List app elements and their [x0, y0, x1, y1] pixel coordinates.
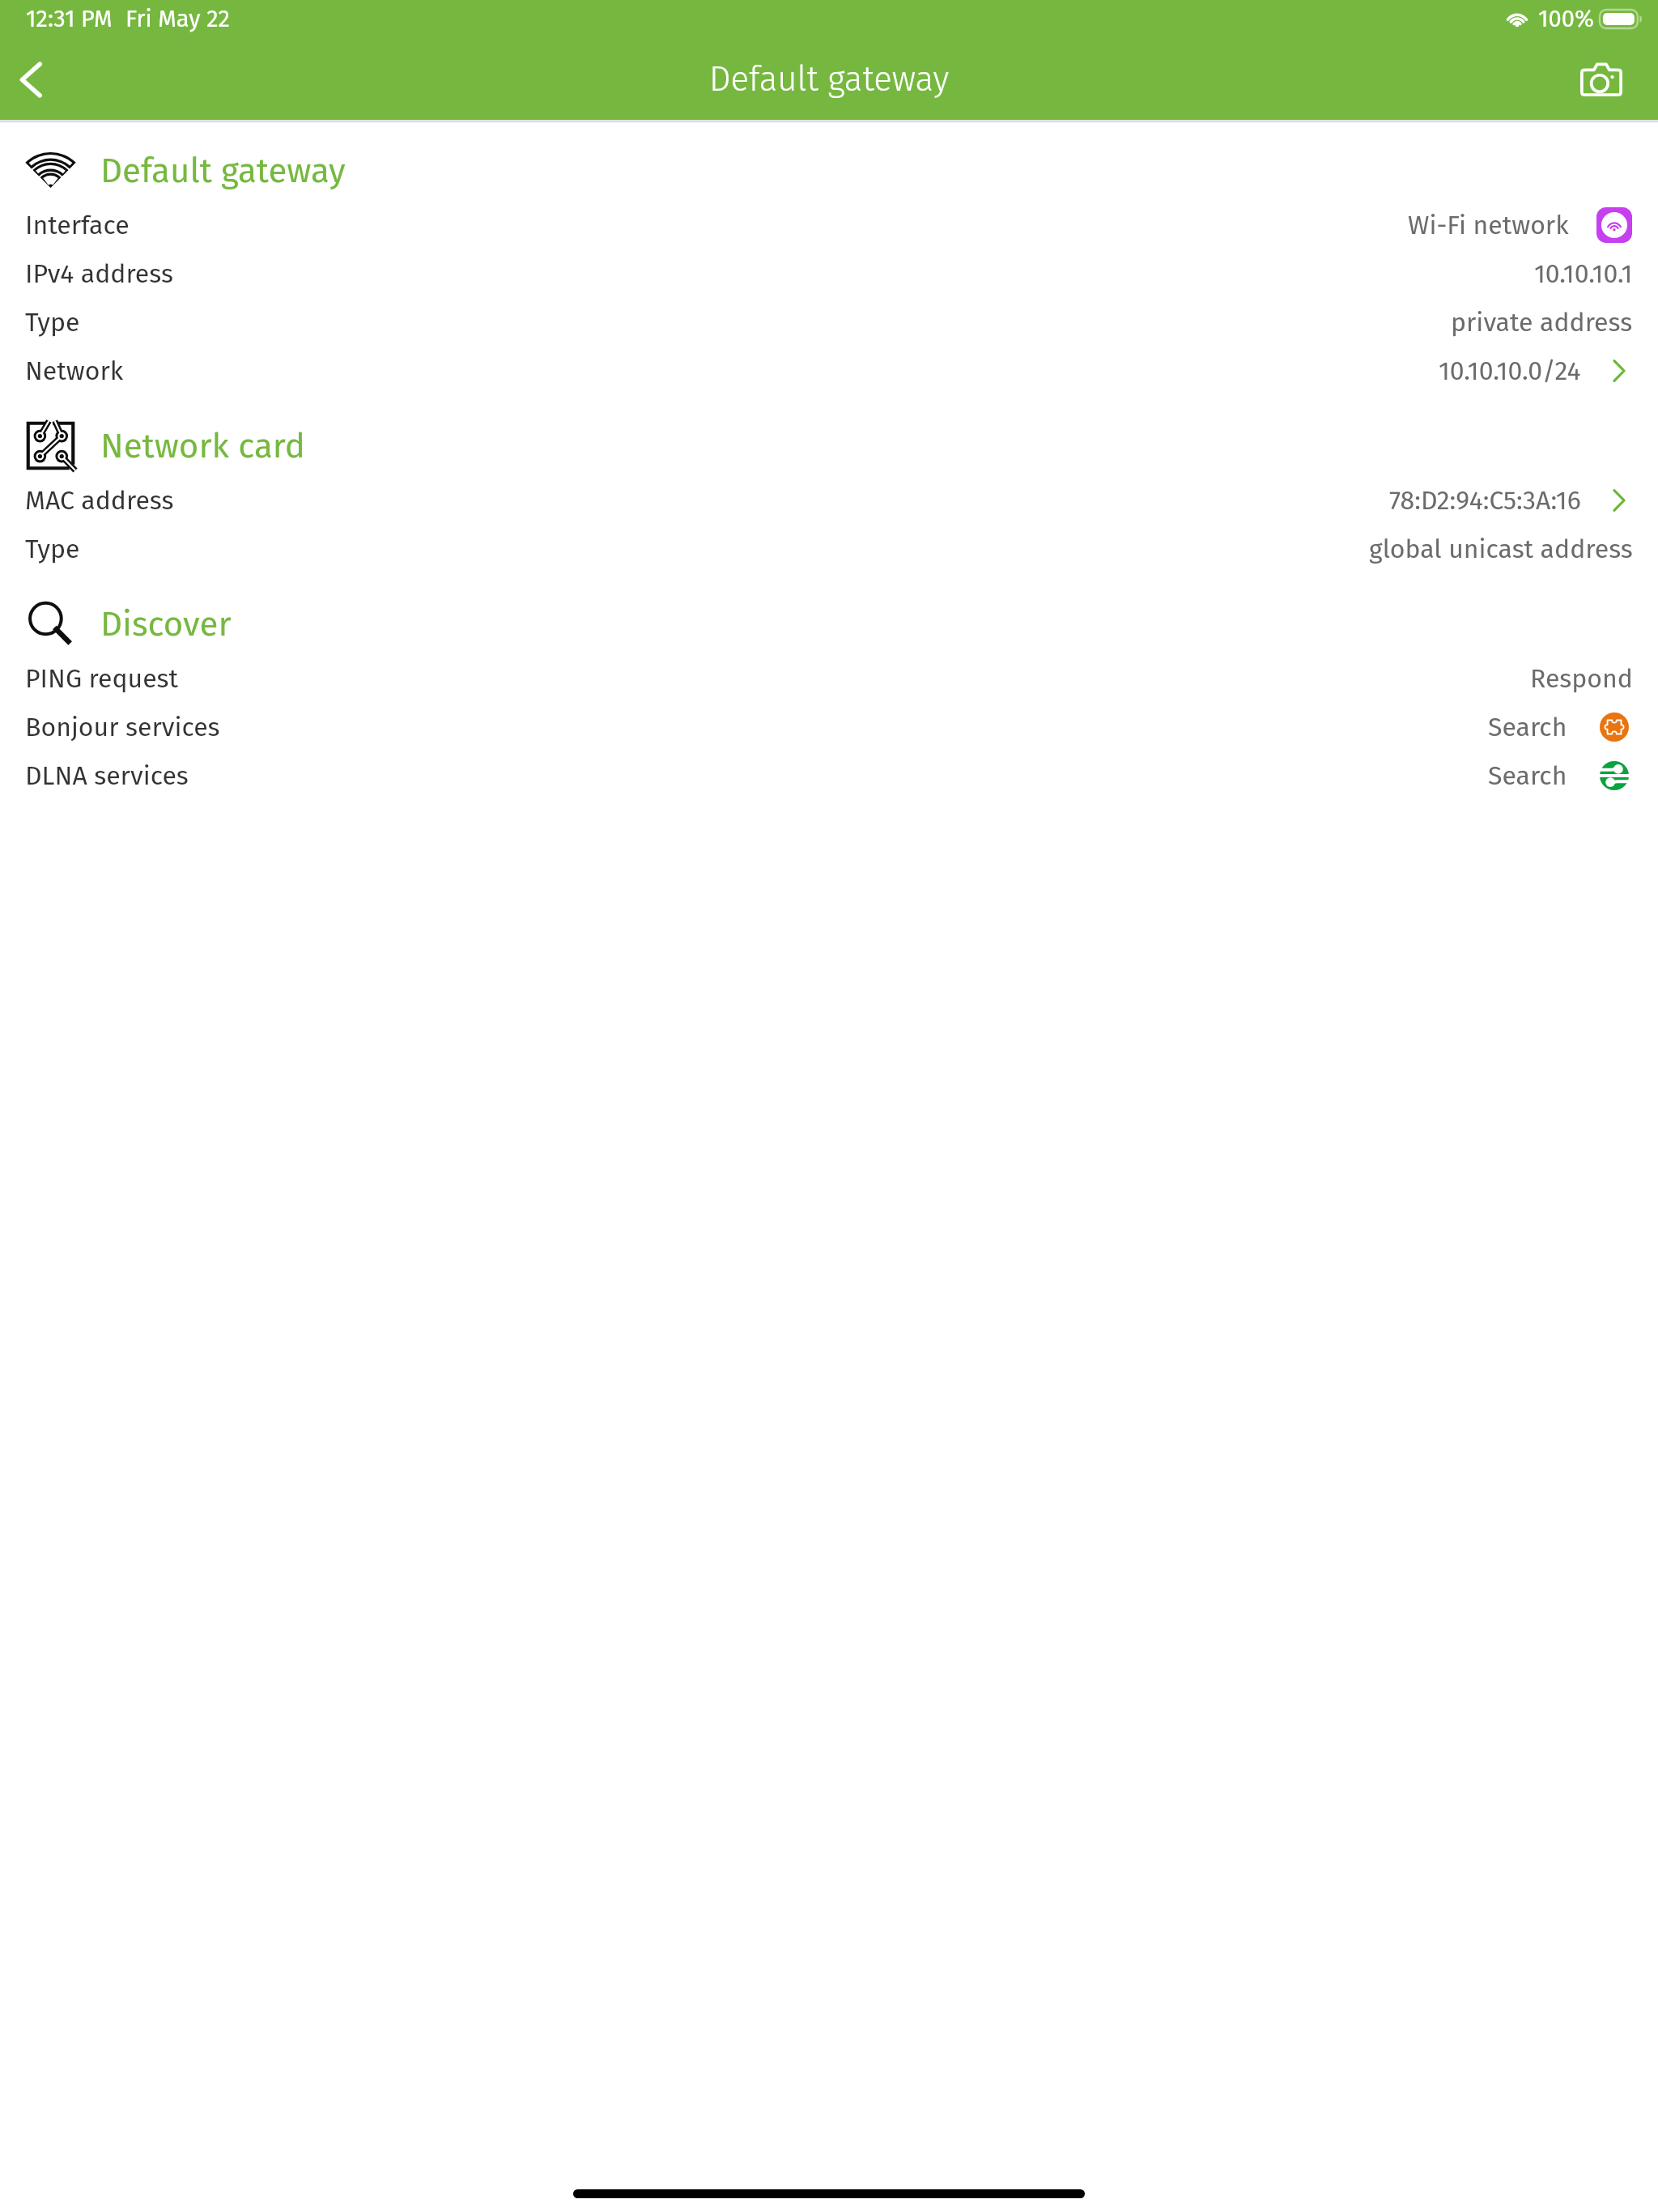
- staticText: Search: [1488, 712, 1567, 742]
- staticText: global unicast address: [1369, 534, 1633, 564]
- staticText: 10.10.10.0/24: [1439, 355, 1581, 386]
- button[interactable]: Interface: [0, 201, 1658, 249]
- button[interactable]: Camera: [1544, 39, 1658, 120]
- staticText: private address: [1451, 307, 1633, 338]
- staticText: Network card: [100, 426, 305, 466]
- staticText: Respond: [1530, 663, 1633, 694]
- staticText: Interface: [25, 210, 130, 240]
- staticText: DLNA services: [25, 760, 189, 791]
- staticText: MAC address: [25, 485, 174, 516]
- button[interactable]: Type: [0, 525, 1658, 573]
- staticText: IPv4 address: [25, 258, 173, 289]
- button[interactable]: Bonjour services: [0, 703, 1658, 751]
- button[interactable]: Network: [0, 347, 1658, 395]
- staticText: Type: [25, 307, 80, 338]
- button[interactable]: MAC address: [0, 476, 1658, 525]
- staticText: 10.10.10.1: [1534, 258, 1633, 289]
- button[interactable]: Back: [0, 39, 62, 120]
- staticText: 100%: [1538, 5, 1594, 33]
- staticText: Fri May 22: [125, 5, 230, 33]
- staticText: Default gateway: [709, 59, 950, 100]
- staticText: Search: [1488, 760, 1567, 791]
- staticText: Default gateway: [100, 151, 346, 191]
- staticText: Network: [25, 355, 124, 386]
- staticText: PING request: [25, 663, 179, 694]
- button[interactable]: Type: [0, 298, 1658, 347]
- button[interactable]: DLNA services: [0, 751, 1658, 800]
- staticText: Discover: [100, 604, 232, 644]
- button[interactable]: IPv4 address: [0, 249, 1658, 298]
- staticText: Wi-Fi network: [1408, 210, 1569, 240]
- button[interactable]: PING request: [0, 654, 1658, 703]
- staticText: Bonjour services: [25, 712, 220, 742]
- staticText: 78:D2:94:C5:3A:16: [1389, 485, 1581, 516]
- staticText: Type: [25, 534, 80, 564]
- staticText: 12:31 PM: [26, 5, 113, 33]
